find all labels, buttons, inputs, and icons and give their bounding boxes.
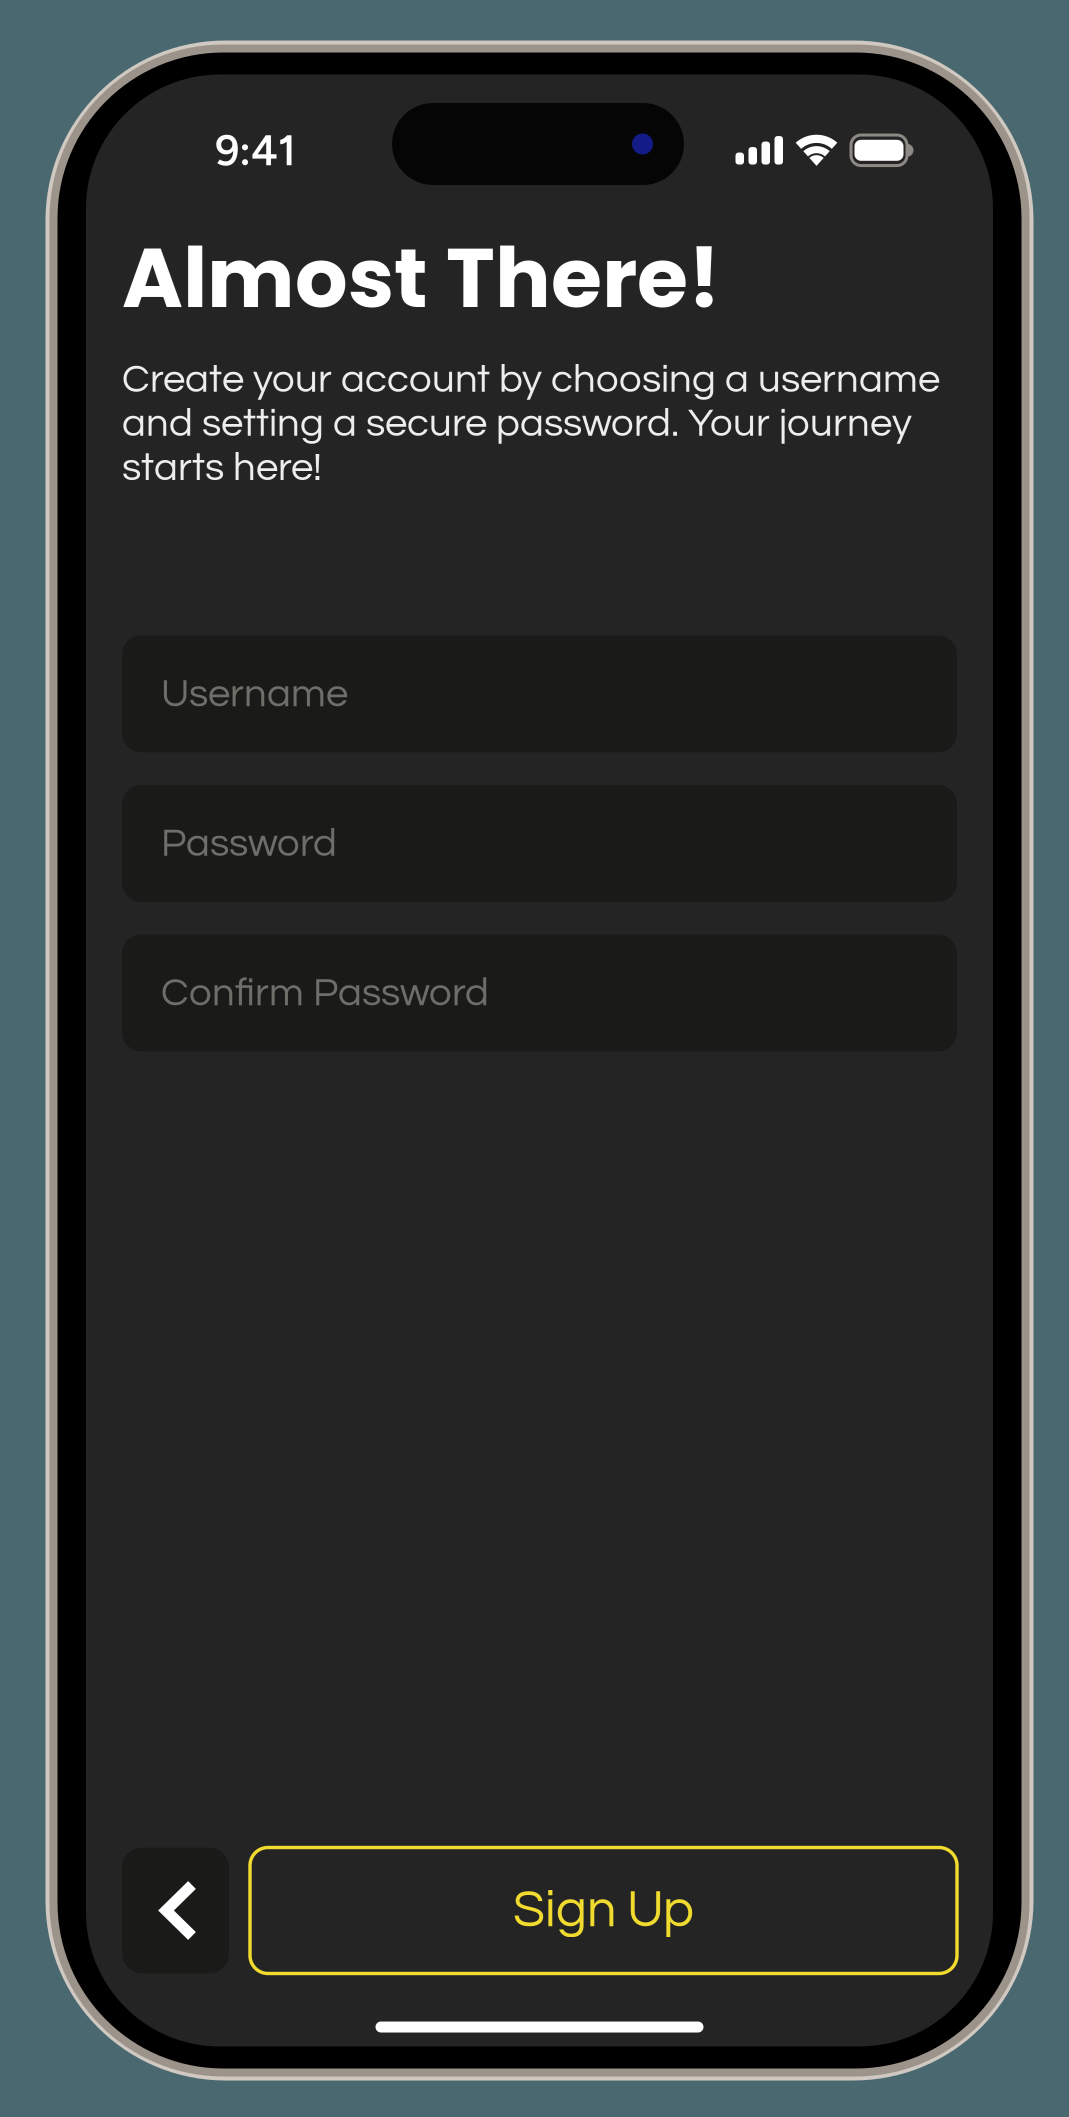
staticText: Create your account by choosing a userna… — [122, 359, 940, 488]
button[interactable]: Username — [122, 635, 957, 752]
staticText: Password — [161, 823, 337, 864]
staticText: Almost There! — [122, 220, 720, 336]
button[interactable]: Sign Up — [250, 1847, 957, 1973]
staticText: Confirm Password — [161, 972, 489, 1013]
staticText: Username — [161, 673, 348, 714]
button[interactable]: Confirm Password — [122, 934, 957, 1051]
staticText: Sign Up — [513, 1884, 694, 1937]
staticText: 9:41 — [215, 125, 296, 176]
button[interactable]: Back — [122, 1847, 229, 1973]
button[interactable]: Password — [122, 785, 957, 902]
